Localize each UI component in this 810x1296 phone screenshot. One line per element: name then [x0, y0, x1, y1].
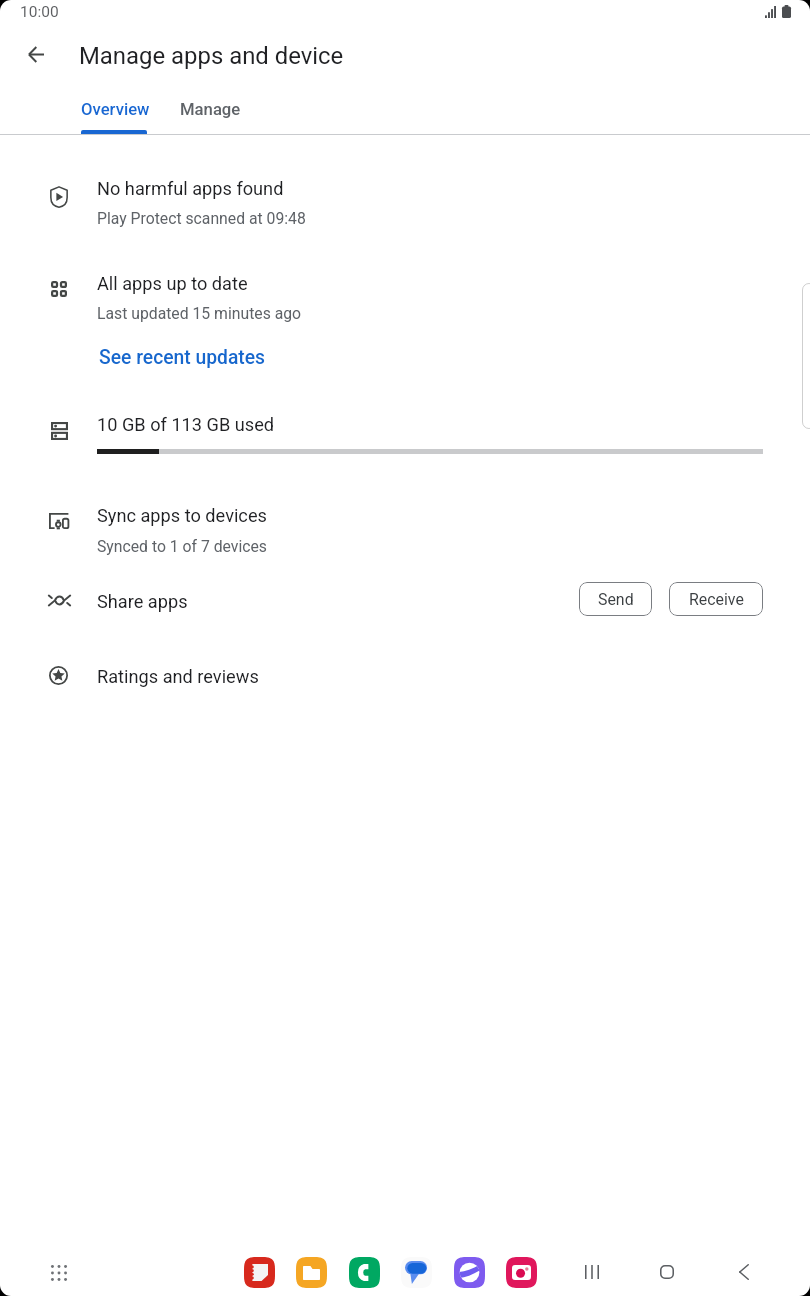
- button[interactable]: Manage: [155, 86, 260, 134]
- staticText: 10:00: [20, 3, 59, 21]
- staticText: Manage apps and device: [79, 42, 344, 70]
- button[interactable]: Notes: [244, 1257, 275, 1288]
- staticText: All apps up to date: [97, 273, 248, 294]
- button[interactable]: All apps up to date: [0, 256, 810, 326]
- staticText: Synced to 1 of 7 devices: [97, 537, 267, 555]
- staticText: Sync apps to devices: [97, 505, 267, 526]
- staticText: Send: [598, 590, 634, 609]
- button[interactable]: See recent updates: [89, 336, 276, 379]
- staticText: No harmful apps found: [97, 178, 284, 199]
- button[interactable]: Share apps: [0, 577, 810, 623]
- button[interactable]: My Files: [296, 1257, 327, 1288]
- button[interactable]: No harmful apps found: [0, 161, 810, 235]
- staticText: Play Protect scanned at 09:48: [97, 209, 306, 227]
- button[interactable]: Internet: [454, 1257, 485, 1288]
- button[interactable]: Messages: [401, 1257, 432, 1288]
- button[interactable]: Recents: [570, 1250, 614, 1294]
- button[interactable]: Receive: [669, 582, 763, 616]
- button[interactable]: Back: [722, 1250, 766, 1294]
- button[interactable]: Overview: [56, 86, 170, 134]
- button[interactable]: Home: [645, 1250, 689, 1294]
- button[interactable]: Sync apps to devices: [0, 489, 810, 561]
- staticText: Manage: [180, 100, 241, 120]
- button[interactable]: Phone: [349, 1257, 380, 1288]
- staticText: Last updated 15 minutes ago: [97, 304, 302, 322]
- staticText: Ratings and reviews: [97, 666, 259, 687]
- button[interactable]: All apps: [38, 1252, 79, 1293]
- button[interactable]: 10 GB of 113 GB used: [0, 402, 810, 464]
- staticText: See recent updates: [99, 346, 266, 369]
- staticText: Overview: [81, 100, 150, 120]
- staticText: 10 GB of 113 GB used: [97, 414, 275, 435]
- staticText: Receive: [689, 590, 744, 609]
- button[interactable]: Ratings and reviews: [0, 653, 810, 699]
- button[interactable]: Camera: [506, 1257, 537, 1288]
- staticText: Share apps: [97, 591, 188, 612]
- button[interactable]: Send: [579, 582, 652, 616]
- button[interactable]: Back: [12, 31, 59, 78]
